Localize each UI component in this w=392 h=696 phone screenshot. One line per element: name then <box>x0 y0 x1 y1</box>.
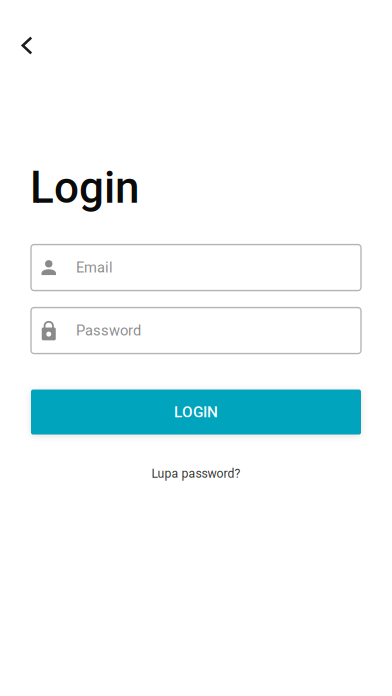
button[interactable]: Back <box>8 26 46 64</box>
button[interactable]: Lupa password? <box>0 464 392 484</box>
staticText: Lupa password? <box>151 466 240 481</box>
staticText: Email <box>76 259 113 276</box>
button[interactable]: LOGIN <box>31 390 361 435</box>
button[interactable]: Password <box>31 308 361 354</box>
staticText: Login <box>30 162 139 214</box>
staticText: LOGIN <box>174 403 218 421</box>
staticText: Password <box>76 322 141 339</box>
button[interactable]: Email <box>31 245 361 291</box>
